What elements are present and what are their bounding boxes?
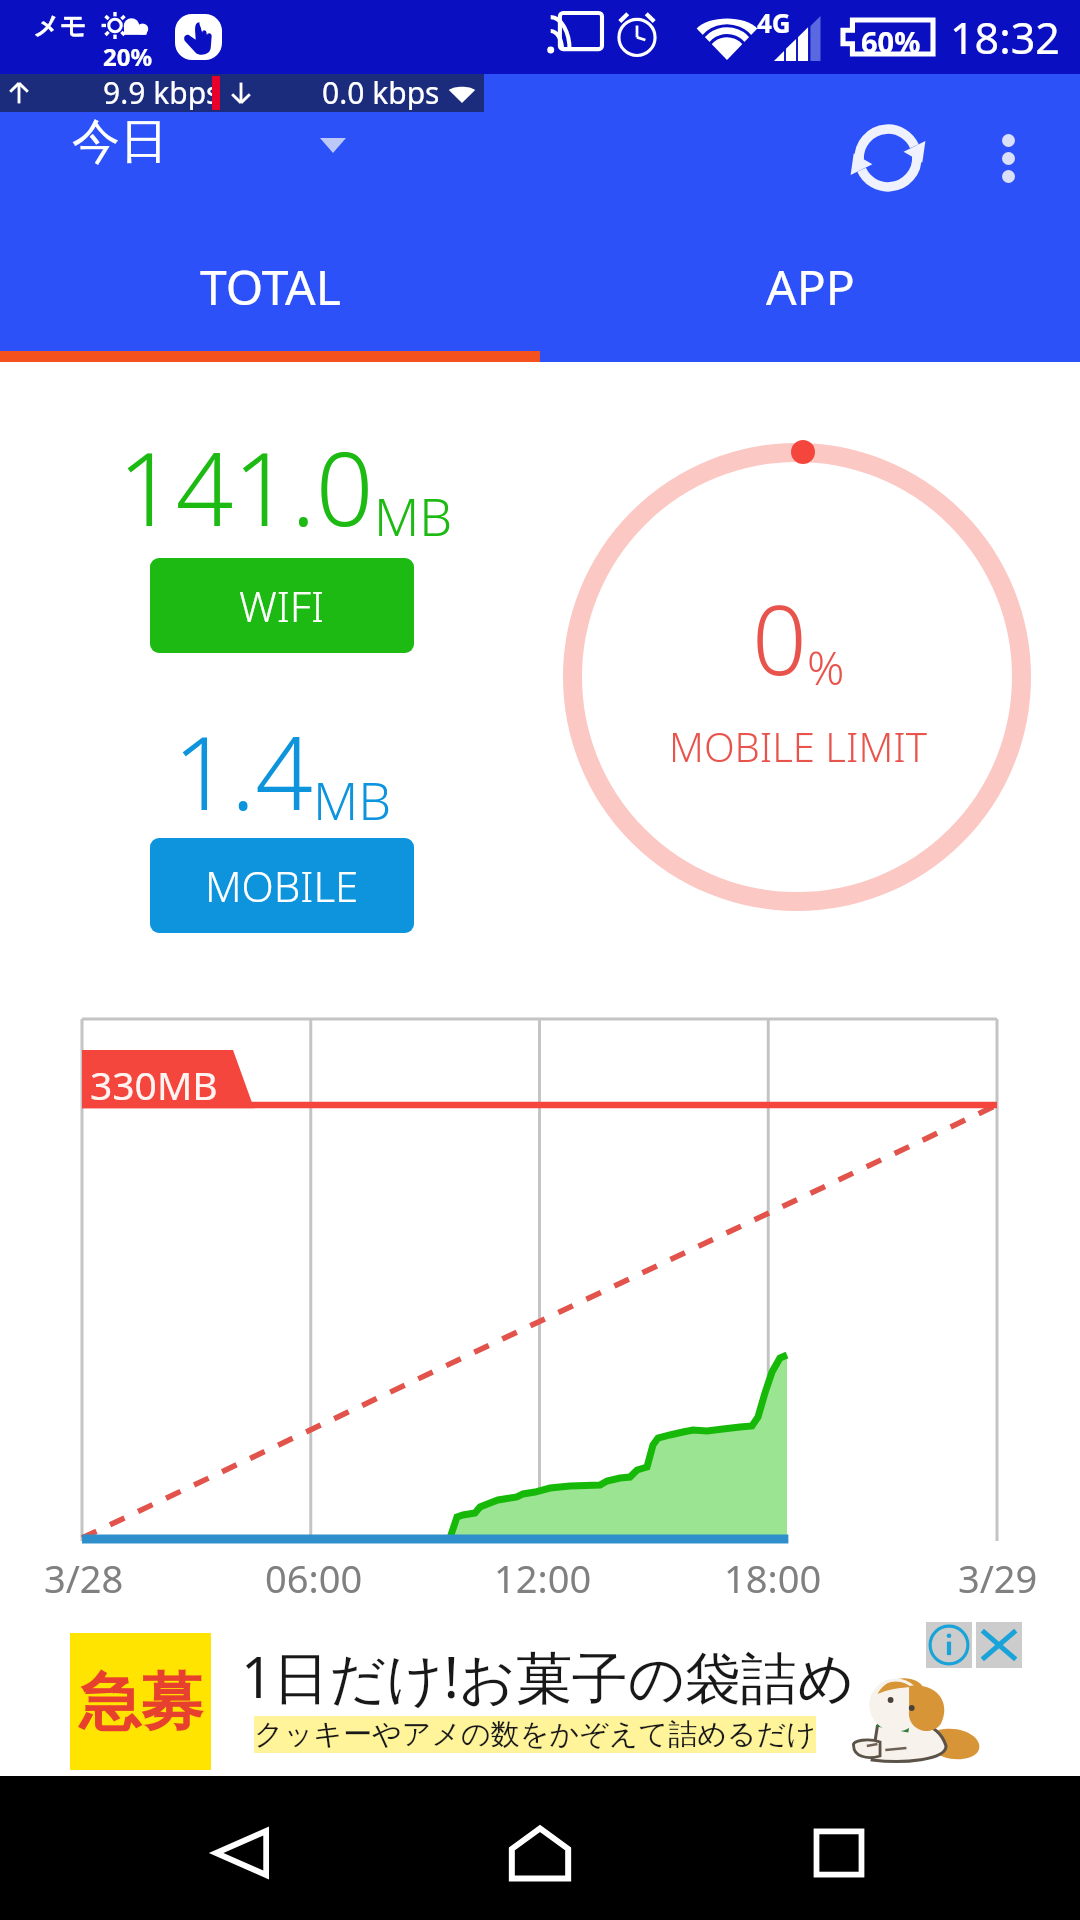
staticText: 141.0 xyxy=(118,418,374,556)
staticText: APP xyxy=(766,254,855,319)
button[interactable]: WIFI xyxy=(150,558,414,653)
staticText: 0 xyxy=(752,572,807,703)
staticText: TOTAL xyxy=(200,254,341,319)
button[interactable]: Recent apps xyxy=(749,1786,929,1920)
button[interactable]: Back xyxy=(150,1786,330,1920)
staticText: % xyxy=(807,636,845,699)
staticText: 12:00 xyxy=(494,1552,592,1604)
button[interactable]: Ad information xyxy=(926,1622,972,1668)
staticText: 1.4 xyxy=(173,702,313,840)
staticText: 今日 xyxy=(72,112,168,172)
staticText: 急募 xyxy=(79,1663,203,1741)
staticText: 3/28 xyxy=(44,1552,124,1604)
staticText: 60% xyxy=(861,22,921,61)
staticText: MOBILE xyxy=(205,857,359,914)
button[interactable]: Close ad xyxy=(976,1622,1022,1668)
button[interactable]: 急募 xyxy=(0,1600,1080,1776)
button[interactable]: APP xyxy=(540,222,1080,351)
button[interactable]: 今日 xyxy=(30,112,390,222)
staticText: 330MB xyxy=(90,1058,218,1111)
button[interactable]: TOTAL xyxy=(0,222,540,351)
staticText: 9.9 kbps xyxy=(103,72,221,110)
staticText: MB xyxy=(313,764,392,835)
staticText: 18:32 xyxy=(950,8,1060,67)
button[interactable]: More options xyxy=(960,94,1056,222)
button[interactable]: Home xyxy=(450,1786,630,1920)
button[interactable]: Refresh xyxy=(824,94,952,222)
staticText: 06:00 xyxy=(265,1552,363,1604)
staticText: クッキーやアメの数をかぞえて詰めるだけ xyxy=(254,1716,816,1753)
button[interactable]: MOBILE xyxy=(150,838,414,933)
staticText: WIFI xyxy=(239,577,325,634)
staticText: 1日だけ!お菓子の袋詰め xyxy=(241,1638,855,1714)
staticText: MB xyxy=(374,480,453,551)
staticText: 0.0 kbps xyxy=(322,72,440,110)
staticText: 20% xyxy=(103,40,153,73)
staticText: MOBILE LIMIT xyxy=(669,719,927,773)
staticText: 4G xyxy=(757,5,791,40)
staticText: 18:00 xyxy=(724,1552,822,1604)
staticText: 3/29 xyxy=(958,1552,1038,1604)
staticText: メモ xyxy=(33,10,87,43)
